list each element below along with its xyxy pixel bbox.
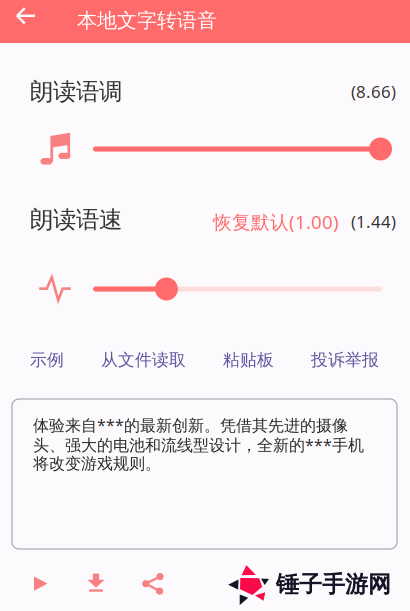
button[interactable]: 投诉举报 — [311, 349, 379, 371]
button[interactable]: Back — [6, 0, 46, 32]
button[interactable]: 从文件读取 — [101, 349, 186, 371]
button[interactable]: 恢复默认(1.00) — [213, 209, 339, 234]
button[interactable]: Share — [131, 562, 175, 606]
staticText: 朗读语速 — [30, 205, 122, 235]
button[interactable]: Play — [19, 562, 63, 606]
staticText: 从文件读取 — [101, 349, 186, 371]
button[interactable]: 示例 — [30, 349, 64, 371]
button[interactable]: 粘贴板 — [223, 349, 274, 371]
staticText: 朗读语调 — [30, 77, 122, 107]
staticText: 恢复默认(1.00) — [213, 209, 339, 234]
staticText: (1.44) — [351, 210, 396, 233]
button[interactable]: Download — [74, 561, 118, 605]
staticText: 锤子手游网 — [276, 570, 391, 599]
staticText: 粘贴板 — [223, 349, 274, 371]
staticText: 示例 — [30, 349, 64, 371]
staticText: (8.66) — [351, 80, 396, 103]
staticText: 投诉举报 — [311, 349, 379, 371]
staticText: 本地文字转语音 — [77, 8, 217, 33]
staticText: 体验来自***的最新创新。凭借其先进的摄像 头、强大的电池和流线型设计，全新的*… — [33, 414, 364, 474]
